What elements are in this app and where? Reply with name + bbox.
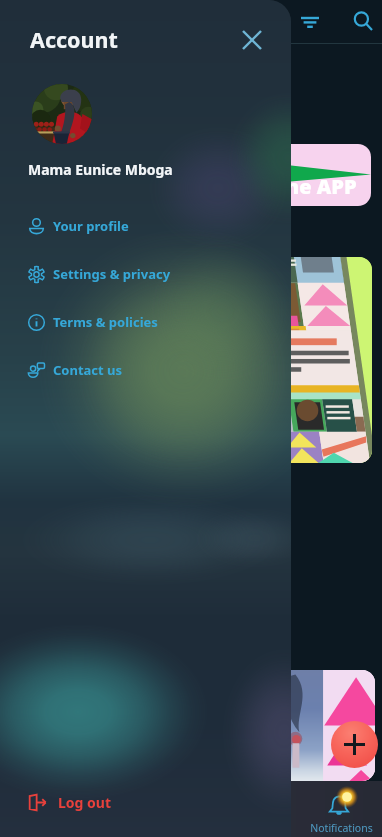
staticText: Terms & policies [53,313,158,331]
button[interactable] [176,257,372,463]
button[interactable]: Close [236,24,268,56]
staticText: Log out [58,793,111,812]
staticText: Your profile [53,217,129,235]
button[interactable]: Contact us [24,356,264,384]
button[interactable]: Filter [294,6,326,38]
staticText: Account [30,25,118,54]
button[interactable]: Search [347,5,379,37]
button[interactable] [176,670,375,781]
staticText: Get the APP [235,173,357,200]
button[interactable]: Notifications [302,789,380,835]
staticText: Mama Eunice Mboga [28,160,173,179]
button[interactable]: Your profile [24,212,264,240]
button[interactable]: Log out [24,787,111,817]
button[interactable]: Settings & privacy [24,260,264,288]
staticText: Notifications [310,821,373,835]
staticText: Settings & privacy [53,265,171,283]
staticText: Contact us [53,361,123,379]
button[interactable]: Get the APP [176,144,371,206]
button[interactable]: Terms & policies [24,308,264,336]
button[interactable]: Add [331,721,378,768]
